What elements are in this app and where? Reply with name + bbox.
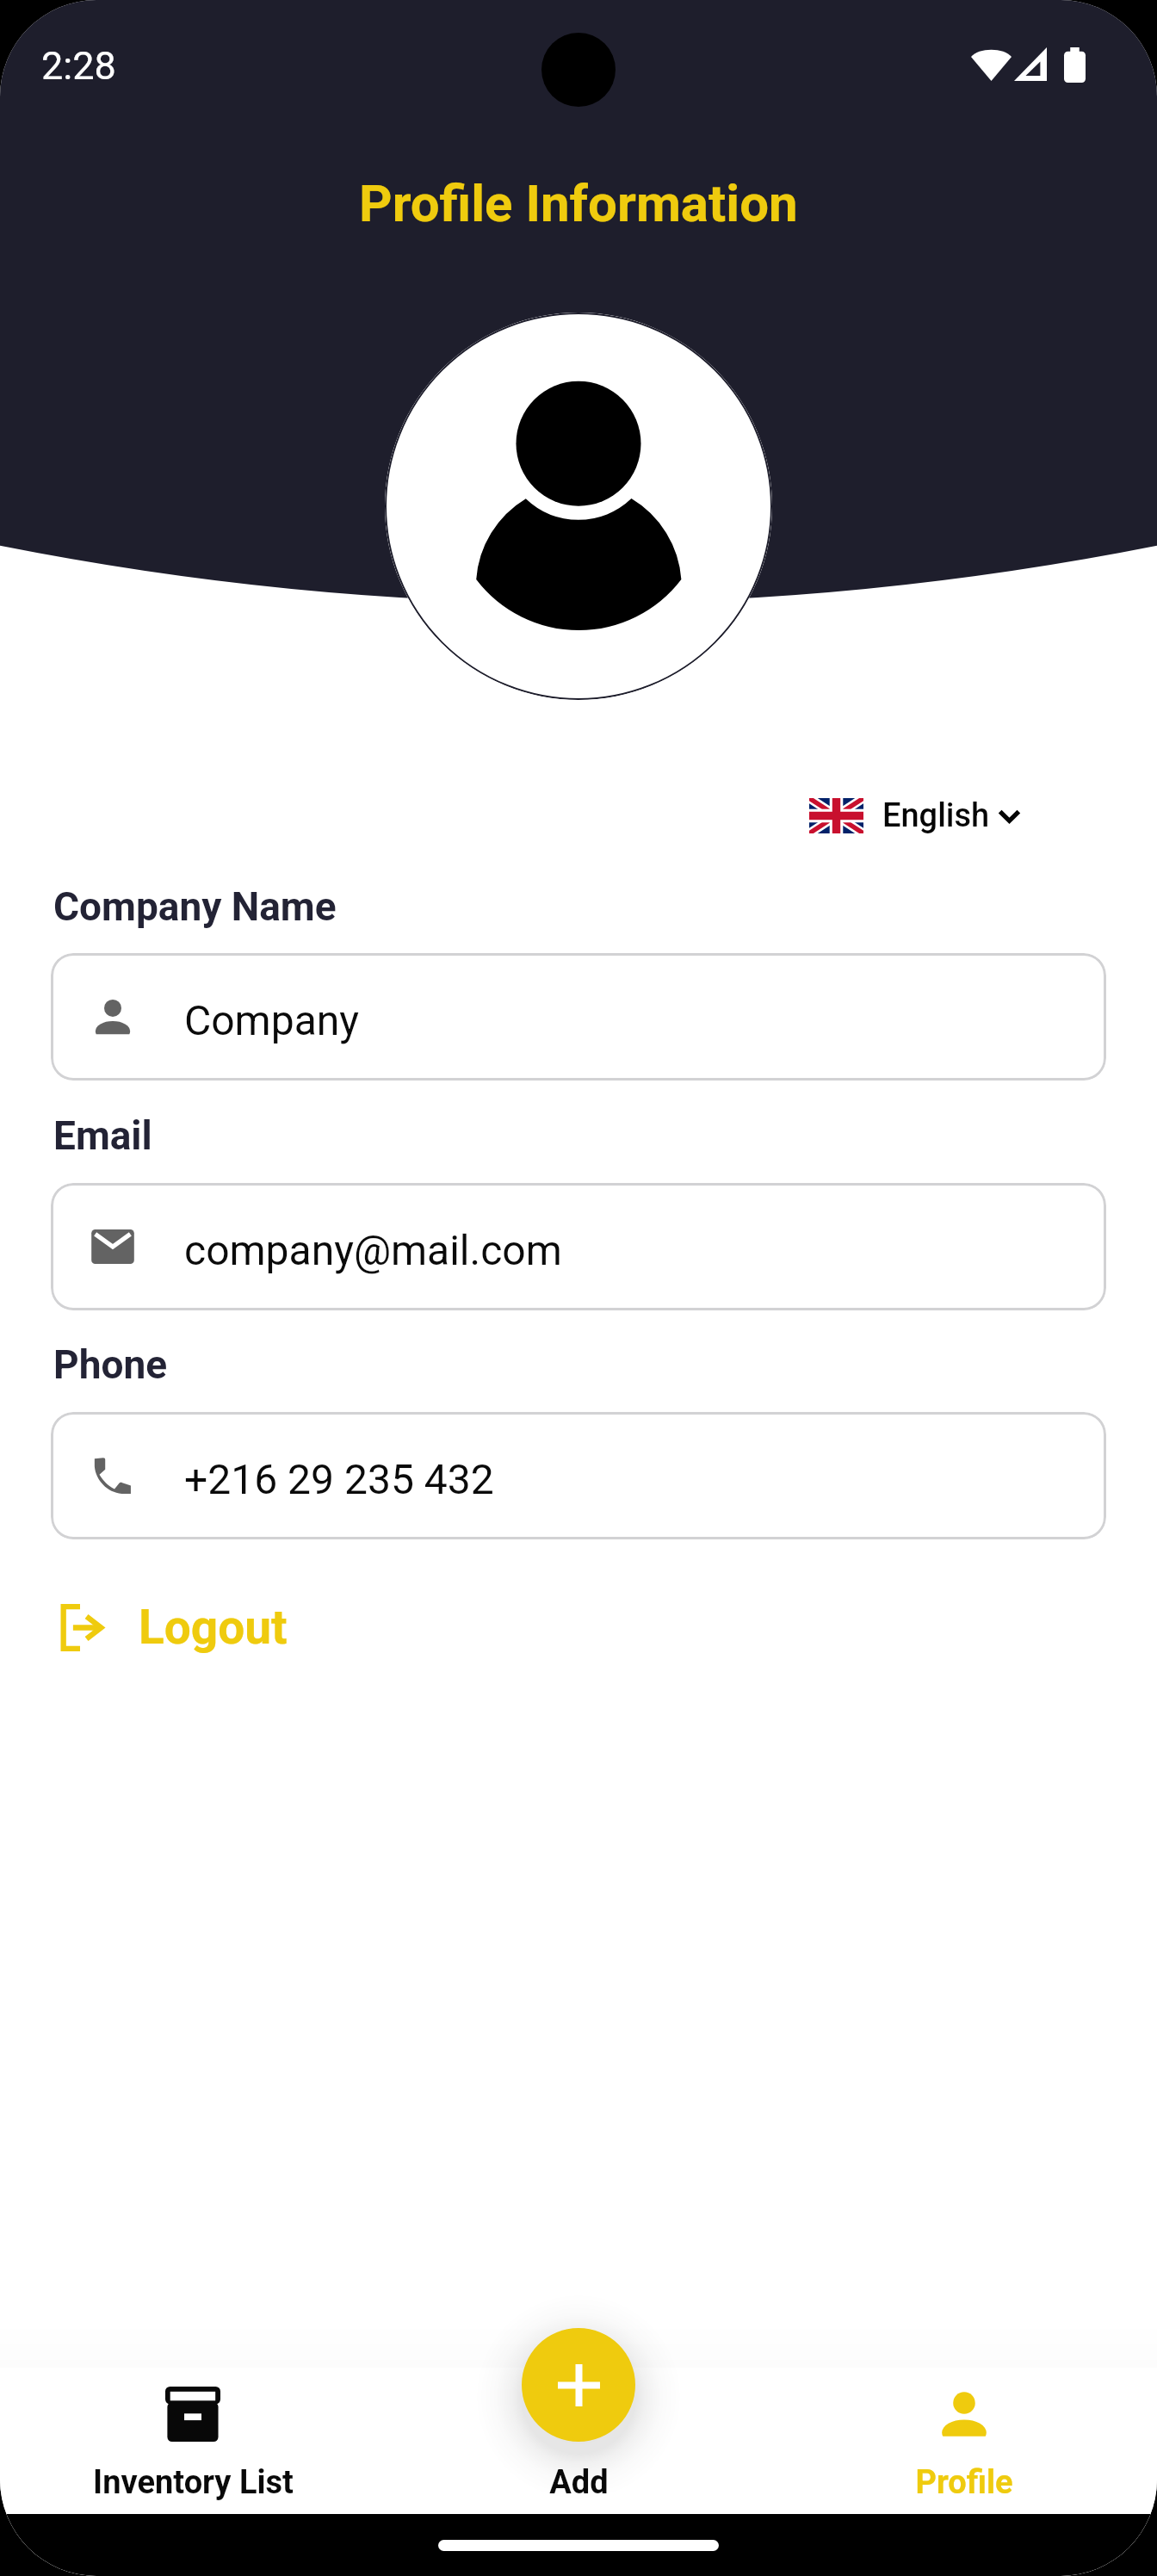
staticText: Logout <box>139 1600 288 1655</box>
button[interactable]: English <box>797 786 1033 845</box>
button[interactable]: Logout <box>44 1588 300 1667</box>
staticText: 2:28 <box>41 43 116 89</box>
staticText: +216 29 235 432 <box>184 1455 494 1503</box>
staticText: Company <box>184 996 359 1044</box>
button[interactable]: Add <box>386 2368 771 2576</box>
button[interactable]: company@mail.com <box>51 1183 1106 1310</box>
staticText: Profile Information <box>359 173 798 233</box>
button[interactable]: Inventory List <box>0 2368 386 2576</box>
button[interactable]: Add <box>522 2328 635 2442</box>
button[interactable]: Profile <box>771 2368 1157 2576</box>
staticText: Inventory List <box>93 2463 294 2502</box>
button[interactable]: Company <box>51 953 1106 1081</box>
staticText: Profile <box>915 2463 1013 2502</box>
staticText: Add <box>549 2463 609 2502</box>
staticText: Phone <box>53 1341 168 1388</box>
staticText: Company Name <box>53 883 337 930</box>
staticText: English <box>882 796 990 835</box>
staticText: company@mail.com <box>184 1226 562 1274</box>
staticText: Email <box>53 1112 152 1159</box>
button[interactable]: +216 29 235 432 <box>51 1412 1106 1539</box>
